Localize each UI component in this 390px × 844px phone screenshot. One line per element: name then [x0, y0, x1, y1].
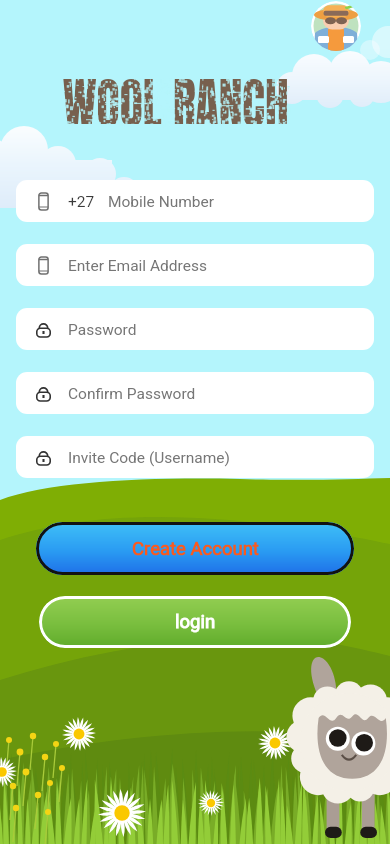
- button[interactable]: Enter Email Address: [16, 244, 374, 286]
- button[interactable]: Confirm Password: [16, 372, 374, 414]
- staticText: WOOL RANCH: [63, 62, 289, 124]
- button[interactable]: Profile: [311, 1, 361, 51]
- staticText: Confirm Password: [68, 385, 196, 403]
- button[interactable]: Password: [16, 308, 374, 350]
- staticText: login: [175, 611, 216, 633]
- button[interactable]: login: [39, 596, 351, 648]
- button[interactable]: +27: [16, 180, 374, 222]
- staticText: Mobile Number: [108, 193, 215, 211]
- staticText: Create Account: [132, 538, 259, 560]
- button[interactable]: Invite Code (Username): [16, 436, 374, 478]
- staticText: Password: [68, 321, 137, 339]
- staticText: +27: [68, 193, 95, 211]
- staticText: Enter Email Address: [68, 257, 207, 275]
- button[interactable]: Create Account: [36, 522, 354, 575]
- staticText: Invite Code (Username): [68, 449, 230, 467]
